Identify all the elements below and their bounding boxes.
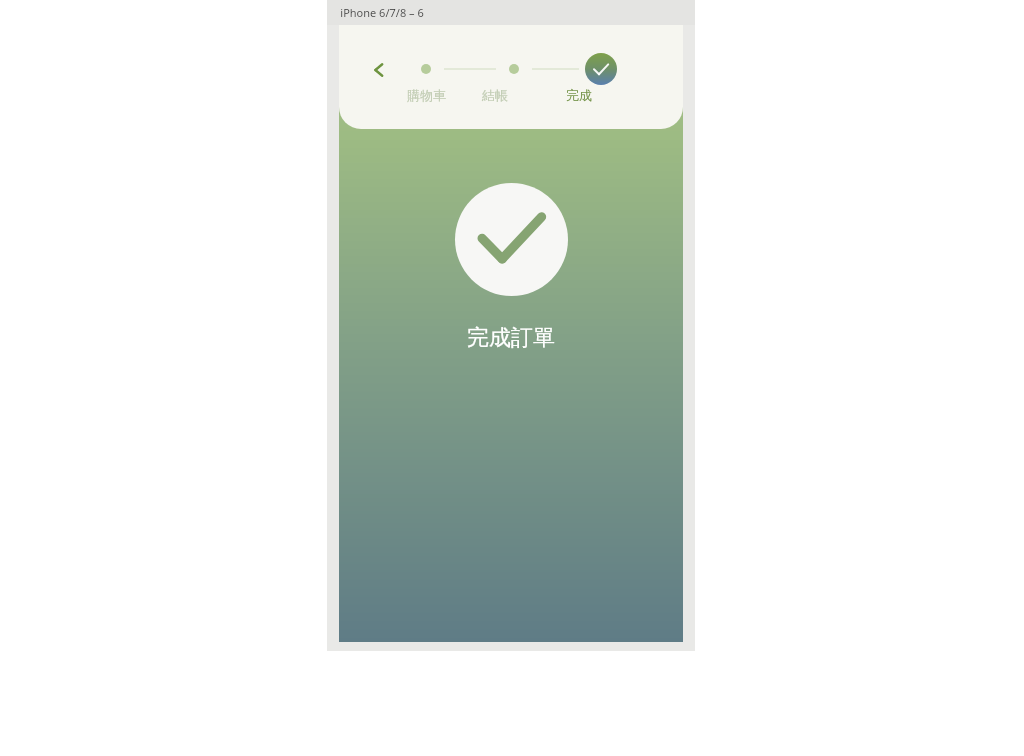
- button[interactable]: 返回: [363, 54, 395, 86]
- button[interactable]: 購物車: [401, 87, 451, 103]
- staticText: iPhone 6/7/8 – 6: [340, 5, 424, 20]
- staticText: 完成: [566, 87, 592, 103]
- button[interactable]: 結帳: [451, 87, 539, 103]
- button[interactable]: 完成: [539, 87, 619, 103]
- staticText: 完成訂單: [467, 324, 555, 352]
- staticText: 結帳: [482, 87, 508, 103]
- staticText: 購物車: [407, 87, 446, 103]
